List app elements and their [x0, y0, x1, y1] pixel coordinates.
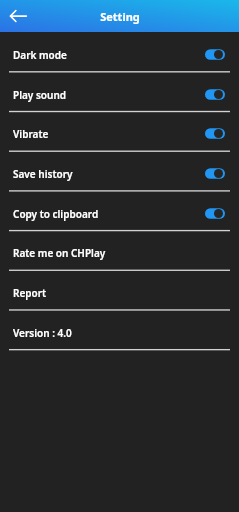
staticText: Setting [100, 9, 140, 24]
staticText: Dark mode [13, 48, 67, 62]
button[interactable]: Rate me on CHPlay [0, 231, 239, 271]
button[interactable]: Play sound [0, 73, 239, 113]
button[interactable]: Save history, on [205, 167, 225, 180]
staticText: Save history [13, 167, 73, 181]
button[interactable]: Play sound, on [205, 88, 225, 101]
staticText: Report [13, 286, 47, 300]
button[interactable]: Report [0, 271, 239, 311]
button[interactable]: Dark mode [0, 32, 239, 73]
staticText: Version : 4.0 [13, 326, 72, 340]
button[interactable]: Save history [0, 152, 239, 192]
button[interactable]: Vibrate [0, 112, 239, 152]
button[interactable]: Back [0, 0, 32, 32]
button[interactable]: Vibrate, on [205, 127, 225, 140]
staticText: Copy to clipboard [13, 207, 99, 221]
button[interactable]: Dark mode, on [205, 48, 225, 61]
button[interactable]: Copy to clipboard, on [205, 207, 225, 220]
staticText: Vibrate [13, 127, 49, 141]
button[interactable]: Copy to clipboard [0, 192, 239, 232]
staticText: Play sound [13, 88, 67, 102]
staticText: Rate me on CHPlay [13, 246, 106, 260]
button[interactable]: Version : 4.0 [0, 311, 239, 351]
